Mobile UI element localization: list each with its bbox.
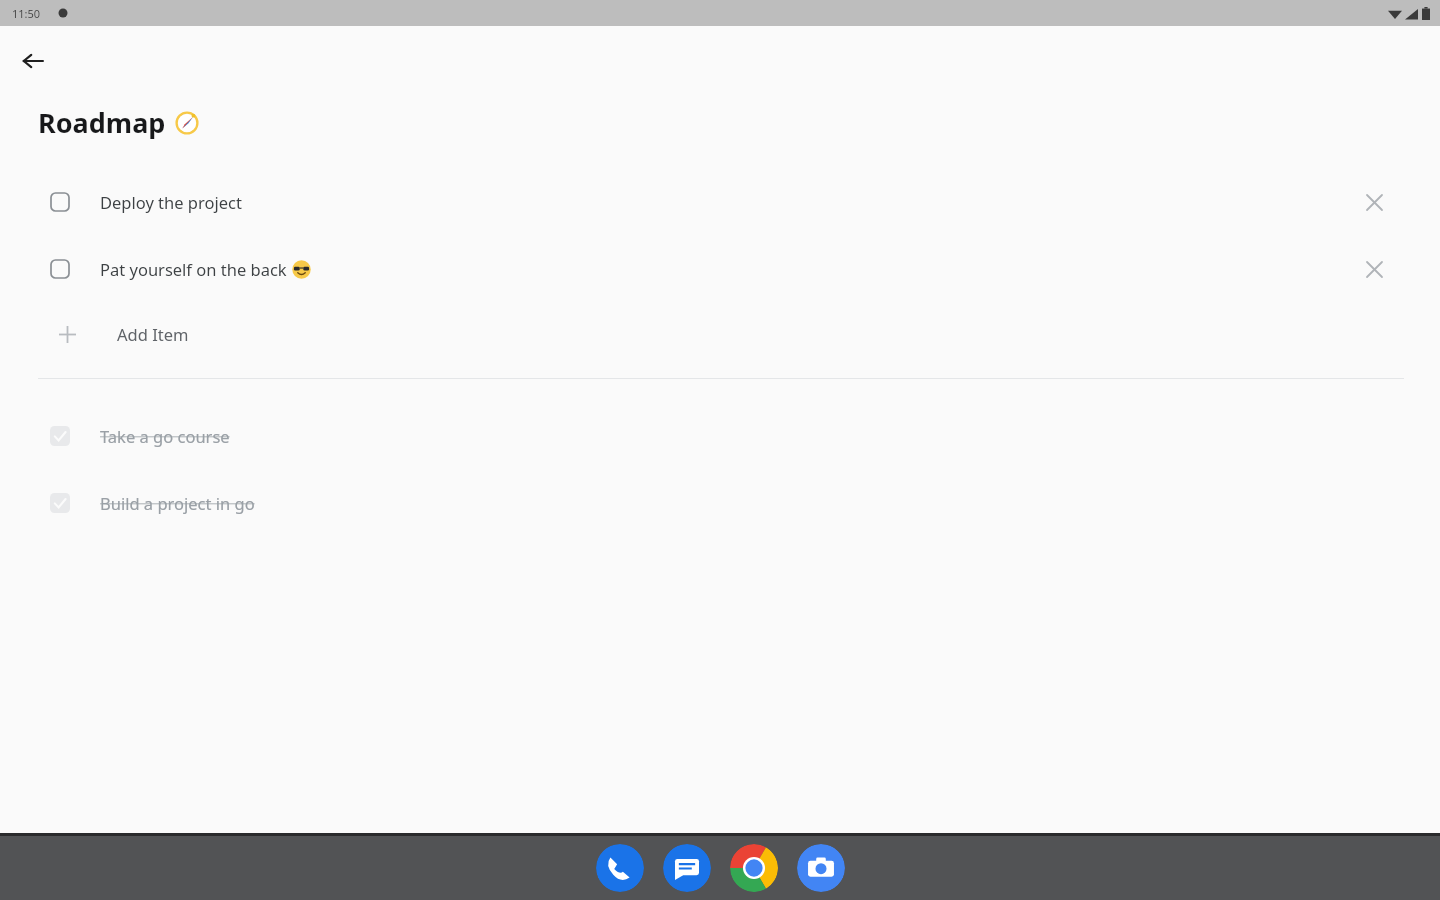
button[interactable]: Toggle Build a project in go bbox=[0, 469, 1440, 536]
staticText: Deploy the project bbox=[100, 191, 242, 213]
staticText: 11:50 bbox=[12, 6, 41, 21]
button[interactable]: Delete Pat yourself on the back bbox=[1358, 253, 1390, 285]
button[interactable]: Camera bbox=[797, 844, 845, 892]
staticText: Pat yourself on the back bbox=[100, 258, 291, 280]
staticText: Take a go course bbox=[100, 425, 230, 447]
staticText: Add Item bbox=[117, 323, 189, 345]
button[interactable]: Messages bbox=[663, 844, 711, 892]
button[interactable]: Toggle Take a go course bbox=[48, 424, 72, 448]
button[interactable]: Toggle Deploy the project bbox=[0, 168, 1440, 235]
button[interactable]: Toggle Pat yourself on the back bbox=[0, 235, 1440, 302]
button[interactable]: Back bbox=[12, 40, 54, 82]
staticText: Build a project in go bbox=[100, 492, 255, 514]
button[interactable]: Toggle Deploy the project bbox=[48, 190, 72, 214]
button[interactable]: Toggle Pat yourself on the back bbox=[48, 257, 72, 281]
button[interactable]: Phone bbox=[596, 844, 644, 892]
button[interactable]: Chrome bbox=[730, 844, 778, 892]
button[interactable]: Toggle Build a project in go bbox=[48, 491, 72, 515]
button[interactable]: Toggle Take a go course bbox=[0, 402, 1440, 469]
staticText: Roadmap bbox=[38, 104, 166, 141]
button[interactable]: Add Item bbox=[0, 302, 1440, 366]
button[interactable]: Delete Deploy the project bbox=[1358, 186, 1390, 218]
